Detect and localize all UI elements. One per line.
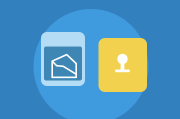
button[interactable]: Stamp (98, 38, 147, 92)
button[interactable]: Mail (41, 32, 85, 86)
